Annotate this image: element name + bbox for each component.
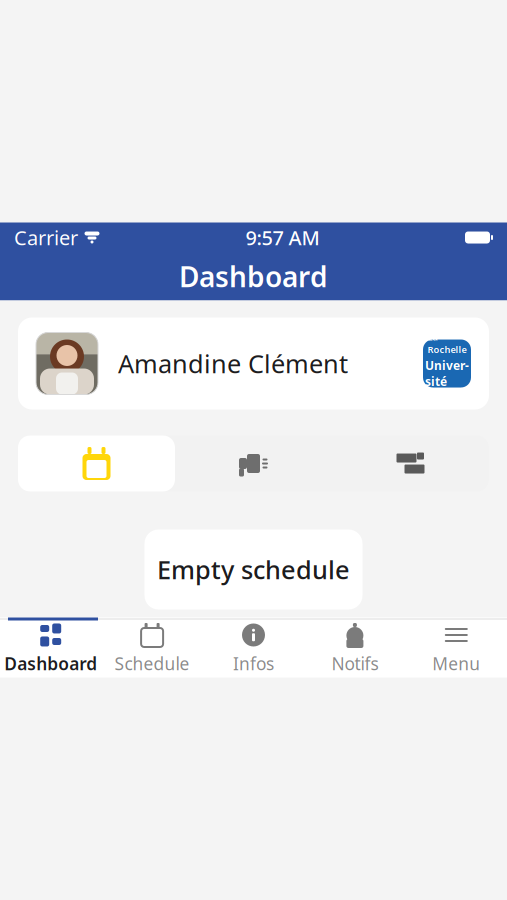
staticText: Menu <box>432 652 480 675</box>
button[interactable]: Announcements <box>175 435 332 491</box>
staticText: Carrier <box>14 224 78 251</box>
staticText: Notifs <box>331 652 378 675</box>
staticText: Amandine Clément <box>118 347 348 380</box>
button[interactable]: Menu <box>406 620 507 677</box>
staticText: La Rochelle <box>427 331 466 355</box>
staticText: Dashboard <box>179 258 328 295</box>
button[interactable]: Services <box>332 435 489 491</box>
staticText: Université <box>425 357 469 389</box>
staticText: 9:57 AM <box>245 224 319 251</box>
button[interactable]: Infos <box>203 620 304 677</box>
staticText: Dashboard <box>4 652 97 675</box>
staticText: Infos <box>233 652 274 675</box>
button[interactable]: Notifs <box>304 620 406 677</box>
staticText: Empty schedule <box>157 553 350 586</box>
button[interactable]: Dashboard <box>0 620 101 677</box>
button[interactable]: Amandine Clément <box>18 317 489 409</box>
button[interactable]: Schedule <box>101 620 203 677</box>
staticText: Schedule <box>115 652 190 675</box>
button[interactable]: Schedule <box>18 435 175 491</box>
